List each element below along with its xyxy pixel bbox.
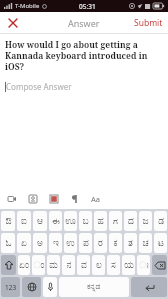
button[interactable]: ಸ xyxy=(107,255,120,275)
button[interactable]: ಂ xyxy=(32,255,45,275)
other: Shift xyxy=(5,261,13,269)
staticText: 05:31 xyxy=(79,2,96,11)
staticText: ಈ xyxy=(52,217,60,226)
button[interactable]: Paragraph xyxy=(68,192,81,205)
staticText: ಃ xyxy=(139,261,149,270)
staticText: ದ xyxy=(128,217,134,226)
staticText: ಅ xyxy=(37,239,43,248)
button[interactable]: ಜ xyxy=(139,211,152,231)
button[interactable]: ಏಂ xyxy=(18,255,30,275)
staticText: ಕನ್ನಡ xyxy=(87,283,101,291)
button[interactable]: ಃ xyxy=(137,255,150,275)
staticText: ಪ xyxy=(83,239,89,248)
button[interactable]: Add link xyxy=(26,192,39,205)
staticText: ಜ xyxy=(142,217,149,226)
staticText: ಗ xyxy=(113,217,118,226)
button[interactable]: ಚ xyxy=(139,233,152,253)
button[interactable]: ಕನ್ನಡ xyxy=(59,277,129,297)
staticText: Submit xyxy=(134,17,163,29)
staticText: ಕ xyxy=(113,239,118,248)
button[interactable]: ಮ xyxy=(47,255,60,275)
button[interactable]: ಓ xyxy=(1,233,15,253)
button[interactable]: ಅ xyxy=(33,233,47,253)
button[interactable]: ಏ xyxy=(17,233,31,253)
staticText: ಡ xyxy=(158,217,164,226)
staticText: ಮ xyxy=(49,261,58,270)
staticText: ಲ xyxy=(96,261,102,270)
button[interactable]: ದ xyxy=(124,211,137,231)
staticText: ಚ xyxy=(142,239,149,248)
staticText: ಂ xyxy=(33,261,45,270)
button[interactable]: ಪ xyxy=(79,233,92,253)
staticText: ತ xyxy=(128,239,133,248)
button[interactable]: ಔ xyxy=(1,211,15,231)
staticText: Compose Answer xyxy=(6,81,72,92)
button[interactable]: ವ xyxy=(77,255,90,275)
staticText: ಏ xyxy=(21,239,27,248)
button[interactable]: ಗ xyxy=(109,211,122,231)
staticText: ಓ xyxy=(5,239,12,248)
button[interactable]: Shift xyxy=(1,255,16,275)
staticText: 123 xyxy=(5,283,17,292)
staticText: ನ xyxy=(66,261,72,270)
button[interactable]: ಯ xyxy=(122,255,135,275)
staticText: Aa xyxy=(91,194,100,204)
button[interactable]: ಉ xyxy=(64,233,77,253)
staticText: ಇ xyxy=(53,239,59,248)
staticText: T-Mobile xyxy=(15,2,40,10)
staticText: ಬ xyxy=(82,217,89,226)
button[interactable]: ಡ xyxy=(154,211,167,231)
button[interactable]: Add image xyxy=(47,192,60,205)
button[interactable]: 123 xyxy=(1,277,20,297)
button[interactable]: ತ xyxy=(124,233,137,253)
staticText: ಐ xyxy=(21,217,27,226)
button[interactable]: ಐ xyxy=(17,211,31,231)
button[interactable]: Voice input xyxy=(43,277,57,297)
button[interactable]: ರ xyxy=(94,233,107,253)
staticText: ರ xyxy=(98,239,103,248)
button[interactable]: ಲ xyxy=(92,255,105,275)
staticText: Answer xyxy=(68,17,100,29)
staticText: ಉ xyxy=(66,239,75,248)
staticText: ಯ xyxy=(124,261,134,270)
staticText: ಆ xyxy=(37,217,43,226)
button[interactable]: Add video xyxy=(5,192,18,205)
staticText: ಟ xyxy=(158,239,164,248)
staticText: ಊ xyxy=(65,217,76,226)
button[interactable]: ಬ xyxy=(79,211,92,231)
staticText: ಔ xyxy=(5,217,12,226)
button[interactable]: Submit xyxy=(129,14,168,32)
staticText: ಏಂ xyxy=(19,261,29,270)
button[interactable]: ಇ xyxy=(49,233,62,253)
button[interactable]: Backspace xyxy=(152,255,167,275)
button[interactable]: ಊ xyxy=(64,211,77,231)
button[interactable]: ಟ xyxy=(154,233,167,253)
button[interactable]: Return xyxy=(131,277,167,297)
button[interactable]: ಹ xyxy=(94,211,107,231)
button[interactable]: Aa xyxy=(89,192,102,206)
staticText: ವ xyxy=(81,261,87,270)
button[interactable]: ಕ xyxy=(109,233,122,253)
staticText: How would I go about getting a Kannada k… xyxy=(5,39,163,72)
other: Backspace xyxy=(155,262,165,269)
staticText: ಸ xyxy=(111,261,116,270)
button[interactable]: ಈ xyxy=(49,211,62,231)
button[interactable]: ಆ xyxy=(33,211,47,231)
button[interactable]: ನ xyxy=(62,255,75,275)
staticText: ಹ xyxy=(97,217,104,226)
button[interactable]: Switch keyboard xyxy=(22,277,41,297)
button[interactable]: Close xyxy=(4,14,22,32)
